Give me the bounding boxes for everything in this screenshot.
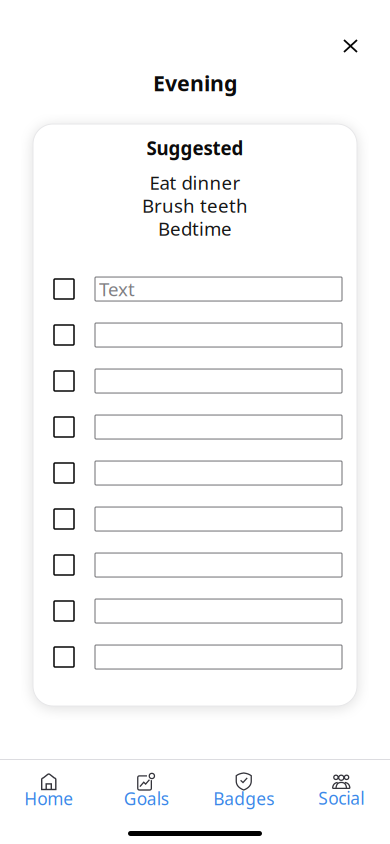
button[interactable]: Badges	[195, 773, 292, 807]
button[interactable]: Empty task	[33, 312, 357, 358]
button[interactable]: Empty task	[33, 404, 357, 450]
button[interactable]: Close	[334, 30, 367, 62]
staticText: Goals	[124, 787, 169, 810]
button[interactable]: Social	[292, 773, 390, 806]
button[interactable]: Empty task	[33, 450, 357, 496]
staticText: Suggested	[146, 136, 243, 160]
button[interactable]: Goals	[97, 773, 195, 807]
staticText: Badges	[213, 787, 274, 810]
button[interactable]: Task	[33, 266, 357, 312]
button[interactable]: Empty task	[33, 542, 357, 588]
staticText: Social	[318, 786, 364, 809]
staticText: Evening	[153, 69, 237, 97]
button[interactable]: Home	[0, 773, 97, 807]
staticText: Home	[24, 787, 73, 810]
staticText: Eat dinner	[149, 170, 240, 195]
staticText: Brush teeth	[142, 193, 248, 218]
button[interactable]: Empty task	[33, 634, 357, 680]
staticText: Text	[99, 277, 135, 301]
button[interactable]: Empty task	[33, 496, 357, 542]
button[interactable]: Empty task	[33, 358, 357, 404]
staticText: Bedtime	[158, 216, 232, 241]
button[interactable]: Empty task	[33, 588, 357, 634]
